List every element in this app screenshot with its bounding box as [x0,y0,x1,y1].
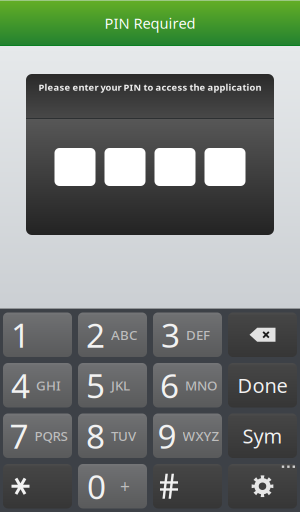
staticText: TUV [111,427,136,445]
staticText: 0 [87,464,106,508]
staticText: 6 [160,363,179,407]
button[interactable]: Done [228,363,297,407]
staticText: MNO [185,376,217,394]
staticText: PIN Required [104,13,195,33]
staticText: 4 [11,363,30,407]
button[interactable]: Delete [228,312,297,357]
staticText: Please enter your PIN to access the appl… [38,81,261,93]
staticText: 7 [9,414,28,458]
staticText: PQRS [34,427,67,445]
button[interactable]: 0 [78,464,147,508]
button[interactable]: 2 [78,312,147,357]
button[interactable]: 4 [3,363,72,407]
staticText: WXYZ [182,427,219,445]
button[interactable]: 5 [78,363,147,407]
staticText: 9 [157,414,176,458]
button[interactable]: Star [3,464,72,508]
staticText: 3 [161,313,180,357]
staticText: GHI [36,376,61,394]
button[interactable]: 8 [78,413,147,458]
button[interactable]: 6 [153,363,222,407]
staticText: + [120,475,130,498]
staticText: Done [237,372,287,399]
staticText: Sym [242,422,282,449]
button[interactable]: 3 [153,312,222,357]
staticText: JKL [111,376,130,394]
staticText: ABC [111,326,137,344]
staticText: 8 [86,414,105,458]
button[interactable]: 7 [3,413,72,458]
staticText: 1 [11,313,30,357]
button[interactable]: 1 [3,312,72,357]
staticText: DEF [186,326,210,344]
button[interactable]: Pound [153,464,222,508]
staticText: 2 [86,313,105,357]
button[interactable]: Settings [228,464,297,508]
staticText: 5 [86,363,105,407]
button[interactable]: 9 [153,413,222,458]
button[interactable]: Sym [228,413,297,458]
